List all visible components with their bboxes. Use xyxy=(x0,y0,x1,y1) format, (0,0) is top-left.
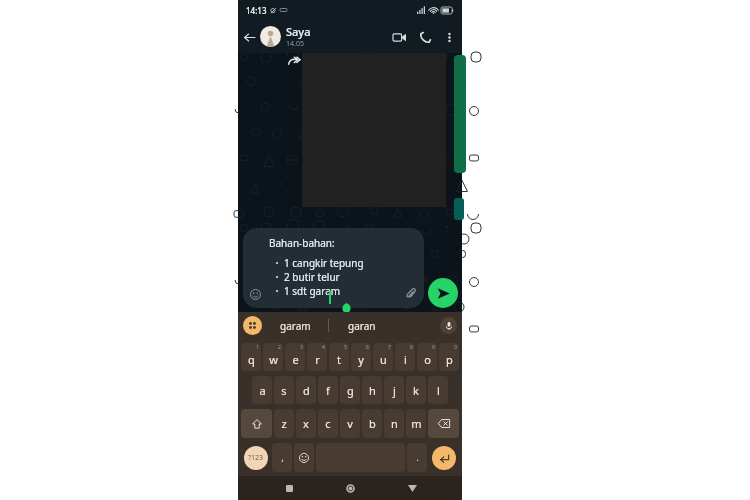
button[interactable]: 8 xyxy=(395,343,415,371)
button[interactable]: Recents xyxy=(278,477,300,499)
button[interactable]: Emoji xyxy=(294,443,314,472)
staticText: l xyxy=(437,383,440,398)
staticText: Bahan-bahan: xyxy=(269,236,335,250)
staticText: x xyxy=(303,416,309,431)
button[interactable]: Attach xyxy=(403,286,419,302)
staticText: 14:13 xyxy=(246,5,267,16)
staticText: 2 butir telur xyxy=(284,270,340,284)
button[interactable]: l xyxy=(428,376,448,404)
button[interactable]: 0 xyxy=(439,343,459,371)
staticText: 1 xyxy=(256,344,259,351)
button[interactable]: n xyxy=(384,409,404,438)
staticText: 8 xyxy=(410,344,413,351)
staticText: p xyxy=(446,352,453,367)
staticText: j xyxy=(393,383,396,398)
button[interactable]: 5 xyxy=(329,343,349,371)
staticText: i xyxy=(404,352,407,367)
button[interactable]: s xyxy=(274,376,294,404)
button[interactable]: Shift xyxy=(241,409,272,438)
button[interactable]: d xyxy=(296,376,316,404)
staticText: 9 xyxy=(432,344,435,351)
button[interactable]: garam xyxy=(262,312,328,339)
staticText: d xyxy=(303,383,310,398)
button[interactable]: Hide keyboard xyxy=(401,477,423,499)
staticText: r xyxy=(315,352,320,367)
button[interactable]: garan xyxy=(329,312,395,339)
button[interactable]: Voice call xyxy=(412,24,438,50)
staticText: f xyxy=(326,383,330,398)
button[interactable]: 1 xyxy=(241,343,261,371)
button[interactable]: g xyxy=(340,376,360,404)
staticText: s xyxy=(281,383,287,398)
button[interactable]: k xyxy=(406,376,426,404)
button[interactable]: Emoji xyxy=(247,286,263,302)
button[interactable]: a xyxy=(252,376,272,404)
button[interactable]: , xyxy=(272,443,292,472)
staticText: , xyxy=(281,452,284,463)
button[interactable]: 6 xyxy=(351,343,371,371)
staticText: 4 xyxy=(322,344,325,351)
button[interactable]: Keyboard menu xyxy=(243,316,262,335)
staticText: n xyxy=(391,416,398,431)
staticText: 14.05 xyxy=(286,39,304,49)
button[interactable]: Enter xyxy=(432,446,456,470)
staticText: q xyxy=(248,352,255,367)
staticText: garan xyxy=(348,319,376,333)
staticText: w xyxy=(269,352,278,367)
staticText: u xyxy=(380,352,387,367)
staticText: o xyxy=(424,352,431,367)
staticText: garam xyxy=(280,319,311,333)
button[interactable]: 7 xyxy=(373,343,393,371)
staticText: t xyxy=(337,352,341,367)
staticText: k xyxy=(413,383,419,398)
button[interactable]: f xyxy=(318,376,338,404)
button[interactable]: 3 xyxy=(285,343,305,371)
staticText: 6 xyxy=(366,344,369,351)
staticText: 0 xyxy=(454,344,457,351)
staticText: 2 xyxy=(278,344,281,351)
button[interactable]: j xyxy=(384,376,404,404)
button[interactable]: Bahan-bahan: xyxy=(243,228,424,308)
staticText: v xyxy=(347,416,353,431)
staticText: Saya xyxy=(286,24,311,39)
staticText: 7 xyxy=(388,344,391,351)
staticText: z xyxy=(281,416,287,431)
staticText: 1 cangkir tepung xyxy=(284,256,364,270)
button[interactable]: Send xyxy=(428,278,458,308)
staticText: y xyxy=(358,352,364,367)
button[interactable]: Home xyxy=(339,477,361,499)
staticText: h xyxy=(369,383,376,398)
button[interactable]: 4 xyxy=(307,343,327,371)
button[interactable]: x xyxy=(296,409,316,438)
button[interactable]: z xyxy=(274,409,294,438)
button[interactable]: More options xyxy=(438,26,460,48)
button[interactable]: . xyxy=(407,443,427,472)
staticText: g xyxy=(347,383,354,398)
staticText: m xyxy=(411,416,422,431)
staticText: b xyxy=(369,416,376,431)
staticText: a xyxy=(259,383,266,398)
button[interactable]: 2 xyxy=(263,343,283,371)
button[interactable]: Video call xyxy=(386,24,412,50)
button[interactable]: m xyxy=(406,409,426,438)
button[interactable]: Saya xyxy=(260,20,386,53)
staticText: 3 xyxy=(300,344,303,351)
button[interactable]: Back xyxy=(238,26,260,48)
staticText: ?123 xyxy=(248,453,264,463)
staticText: c xyxy=(325,416,331,431)
button[interactable]: v xyxy=(340,409,360,438)
button[interactable]: c xyxy=(318,409,338,438)
button[interactable]: ?123 xyxy=(244,446,268,470)
button[interactable]: h xyxy=(362,376,382,404)
staticText: e xyxy=(292,352,299,367)
button[interactable]: Backspace xyxy=(428,409,459,438)
staticText: 5 xyxy=(344,344,347,351)
button[interactable]: 9 xyxy=(417,343,437,371)
staticText: 1 sdt garam xyxy=(284,284,341,298)
button[interactable]: b xyxy=(362,409,382,438)
staticText: . xyxy=(416,452,419,463)
button[interactable]: Voice input xyxy=(440,317,457,334)
